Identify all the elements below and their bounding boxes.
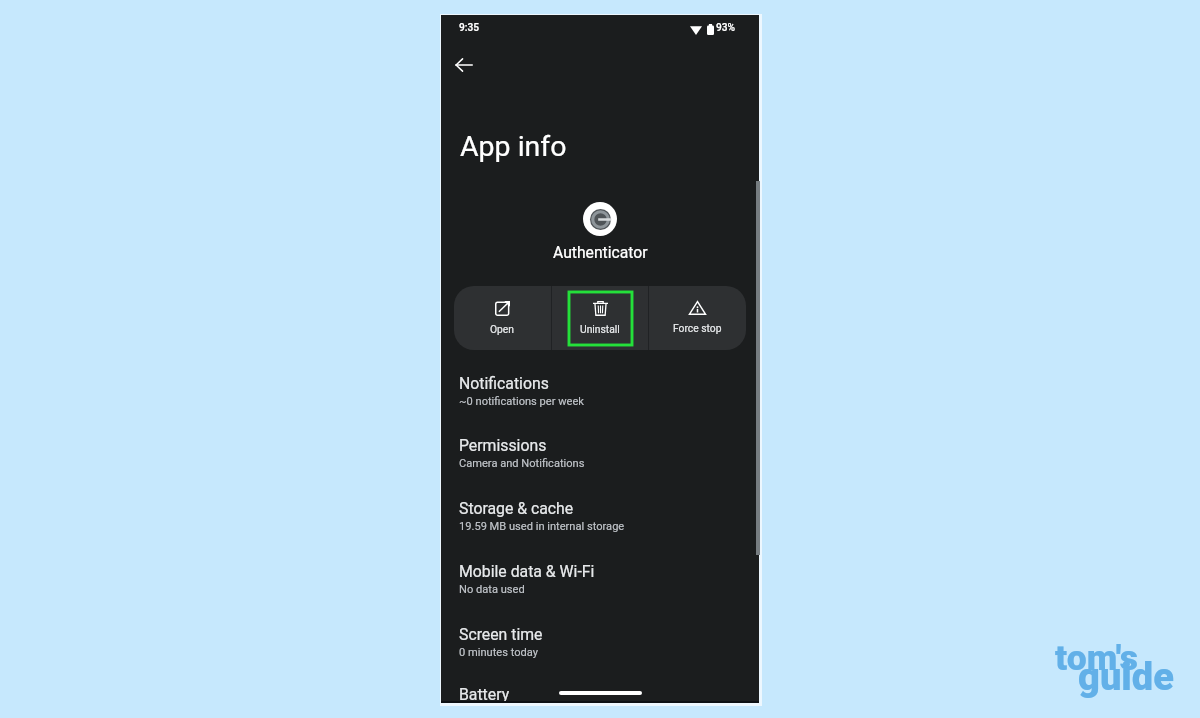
staticText: 93% xyxy=(716,22,736,34)
staticText: Open xyxy=(490,323,515,335)
staticText: App info xyxy=(460,130,567,163)
button[interactable]: Battery xyxy=(441,675,759,718)
staticText: Storage & cache xyxy=(459,499,574,518)
staticText: Notifications xyxy=(459,374,549,393)
button[interactable]: Open xyxy=(454,286,551,350)
staticText: Battery xyxy=(459,685,510,704)
staticText: Force stop xyxy=(673,322,722,334)
button[interactable]: Screen time xyxy=(441,612,759,668)
staticText: No data used xyxy=(459,583,525,596)
staticText: Authenticator xyxy=(553,243,648,261)
staticText: ~0 notifications per week xyxy=(459,395,584,408)
staticText: 0 minutes today xyxy=(459,646,538,659)
button[interactable]: Uninstall xyxy=(551,286,649,350)
staticText: 9:35 xyxy=(459,22,480,34)
staticText: guide xyxy=(1078,655,1174,700)
staticText: Screen time xyxy=(459,625,543,644)
staticText: Camera and Notifications xyxy=(459,457,585,470)
button[interactable]: Permissions xyxy=(441,423,759,479)
button[interactable]: Storage & cache xyxy=(441,486,759,542)
staticText: Uninstall xyxy=(580,323,620,335)
button[interactable]: Mobile data & Wi-Fi xyxy=(441,549,759,605)
button[interactable]: Back xyxy=(448,49,480,81)
staticText: Mobile data & Wi-Fi xyxy=(459,562,595,581)
button[interactable]: Force stop xyxy=(648,286,746,350)
button[interactable]: Notifications xyxy=(441,361,759,417)
staticText: tom's xyxy=(1055,637,1138,679)
staticText: Permissions xyxy=(459,436,547,455)
staticText: 19.59 MB used in internal storage xyxy=(459,520,625,533)
